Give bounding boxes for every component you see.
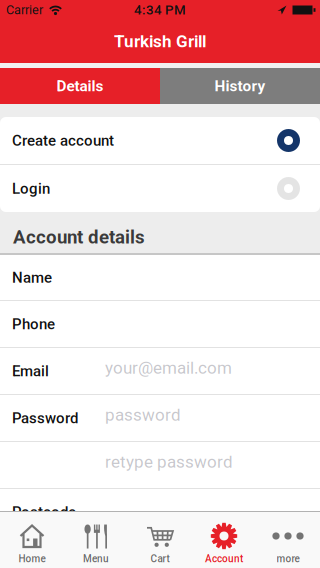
button[interactable]: Cart	[128, 512, 192, 568]
button[interactable]: Name	[0, 255, 320, 300]
button[interactable]: Login	[0, 165, 320, 212]
button[interactable]: History	[160, 68, 320, 104]
button[interactable]: Postcode	[0, 489, 320, 535]
staticText: Menu	[83, 553, 109, 565]
staticText: Password	[12, 409, 78, 427]
button[interactable]: more	[256, 512, 320, 568]
staticText: 4:34 PM	[134, 2, 186, 18]
button[interactable]: Menu	[64, 512, 128, 568]
staticText: Account	[205, 553, 243, 565]
staticText: your@email.com	[105, 358, 232, 378]
staticText: Account details	[13, 226, 145, 248]
staticText: Carrier	[6, 3, 43, 17]
button[interactable]: Email	[0, 348, 320, 394]
button[interactable]: Details	[0, 68, 160, 104]
staticText: more	[276, 553, 299, 565]
button[interactable]	[0, 442, 320, 488]
staticText: retype password	[105, 452, 233, 472]
staticText: Cart	[150, 553, 169, 565]
button[interactable]: Phone	[0, 301, 320, 347]
staticText: Create account	[12, 132, 114, 149]
staticText: Email	[12, 362, 49, 380]
staticText: Home	[18, 553, 45, 565]
button[interactable]: Create account	[0, 117, 320, 164]
staticText: Login	[12, 180, 50, 197]
button[interactable]: Password	[0, 395, 320, 441]
staticText: password	[105, 405, 181, 425]
staticText: Details	[56, 77, 103, 95]
staticText: Postcode	[12, 503, 76, 521]
staticText: Phone	[12, 315, 55, 333]
button[interactable]: Account	[192, 512, 256, 568]
staticText: Turkish Grill	[114, 31, 206, 51]
staticText: History	[214, 77, 265, 95]
staticText: Name	[12, 269, 52, 286]
button[interactable]: Home	[0, 512, 64, 568]
